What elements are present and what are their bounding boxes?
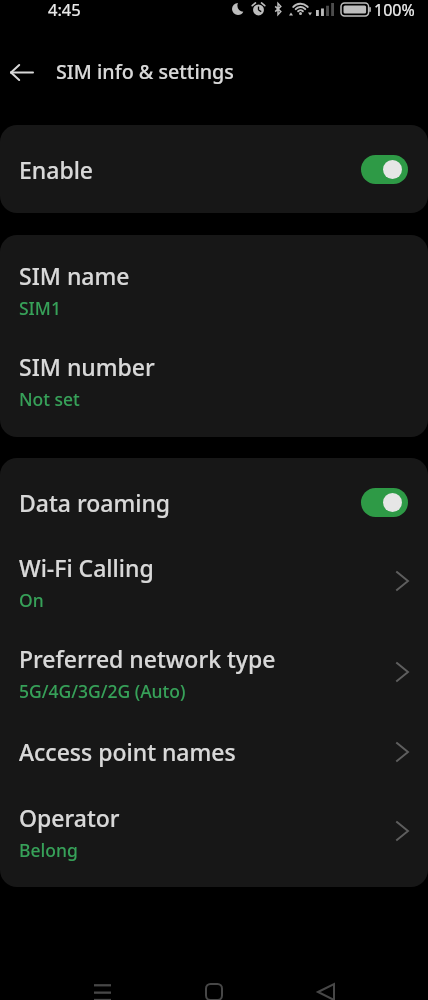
staticText: Wi-Fi Calling [19,552,154,583]
button[interactable]: Back [296,968,356,1000]
staticText: Preferred network type [19,643,276,674]
staticText: On [19,588,44,612]
staticText: Belong [19,838,78,862]
staticText: Data roaming [19,487,171,518]
staticText: Access point names [19,736,236,767]
staticText: SIM1 [19,296,61,320]
button[interactable]: Home [184,968,244,1000]
staticText: 5G/4G/3G/2G (Auto) [19,679,186,703]
staticText: 100% [374,0,415,19]
button[interactable]: Operator [0,796,428,887]
staticText: SIM info & settings [56,58,234,85]
button[interactable]: Enable [0,125,428,213]
button[interactable]: Data roaming [0,458,428,546]
staticText: SIM number [19,351,155,382]
button[interactable]: Toggle [361,488,408,517]
staticText: Operator [19,802,120,833]
button[interactable]: Toggle [361,155,408,184]
button[interactable]: Recents [72,968,132,1000]
button[interactable]: Back [1,52,41,92]
staticText: Not set [19,387,80,411]
staticText: Enable [19,154,94,185]
button[interactable]: SIM name [0,254,428,345]
button[interactable]: Preferred network type [0,637,428,730]
button[interactable]: SIM number [0,345,428,436]
button[interactable]: Access point names [0,730,428,796]
button[interactable]: Wi-Fi Calling [0,546,428,637]
staticText: 4:45 [48,0,81,18]
staticText: SIM name [19,260,130,291]
